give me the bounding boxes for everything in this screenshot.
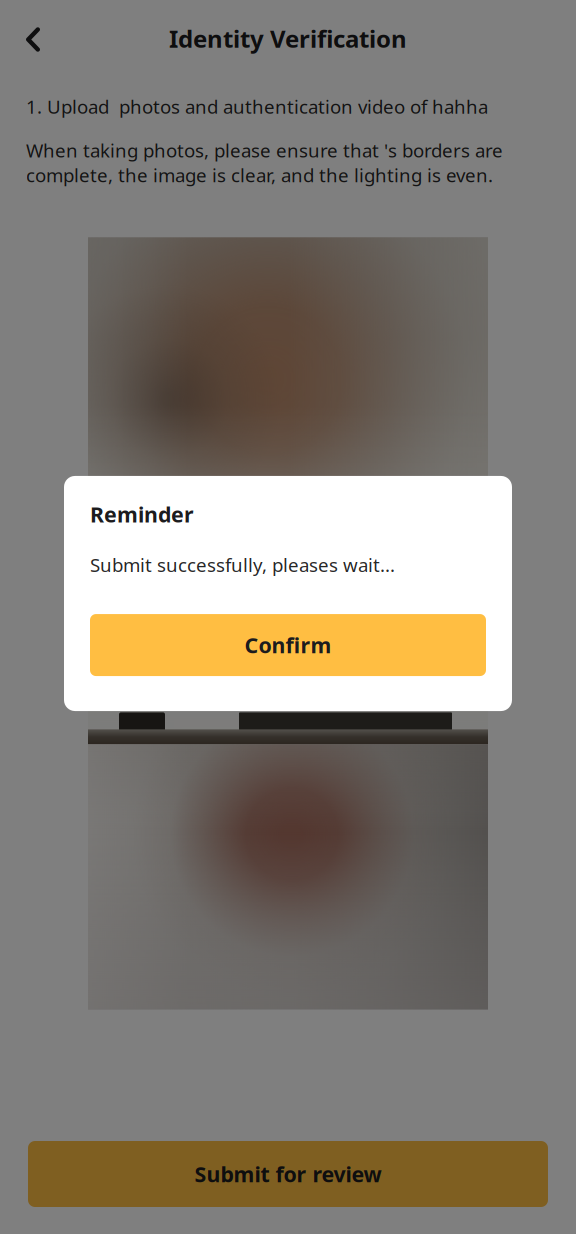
staticText: When taking photos, please ensure that '… <box>26 138 503 187</box>
staticText: Submit for review <box>194 1160 381 1188</box>
staticText: Identity Verification <box>169 23 407 54</box>
staticText: Confirm <box>244 631 331 659</box>
button[interactable]: Confirm <box>90 614 486 676</box>
button[interactable]: Submit for review <box>28 1141 548 1207</box>
staticText: Submit successfully, pleases wait... <box>90 552 395 577</box>
button[interactable]: Back <box>10 16 56 62</box>
staticText: 1. Upload photos and authentication vide… <box>26 94 488 119</box>
staticText: Reminder <box>90 500 194 528</box>
